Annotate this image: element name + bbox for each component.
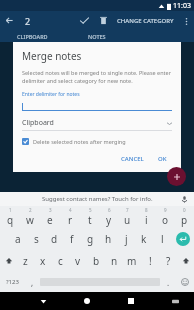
- button[interactable]: Delete selected notes after merging: [22, 138, 172, 145]
- staticText: b: [93, 254, 100, 268]
- staticText: 2: [25, 15, 31, 27]
- button[interactable]: ?: [159, 250, 177, 272]
- button[interactable]: Shift: [177, 250, 194, 272]
- staticText: g: [87, 232, 94, 246]
- button[interactable]: .: [160, 272, 176, 292]
- button[interactable]: h: [99, 228, 117, 250]
- button[interactable]: Back: [35, 293, 51, 309]
- staticText: 4: [69, 207, 72, 213]
- staticText: Enter delimiter for notes: [22, 91, 80, 98]
- button[interactable]: 0: [175, 206, 194, 228]
- staticText: Suggest contact names? Touch for info.: [42, 195, 153, 203]
- button[interactable]: x: [34, 250, 51, 272]
- staticText: z: [23, 254, 28, 268]
- staticText: q: [7, 213, 14, 227]
- button[interactable]: a: [9, 228, 27, 250]
- button[interactable]: Recents: [123, 293, 139, 309]
- button[interactable]: 8: [137, 206, 156, 228]
- button[interactable]: k: [135, 228, 153, 250]
- button[interactable]: b: [87, 250, 105, 272]
- staticText: d: [51, 232, 58, 246]
- button[interactable]: 7: [118, 206, 137, 228]
- button[interactable]: c: [51, 250, 69, 272]
- staticText: l: [161, 232, 164, 246]
- button[interactable]: Suggest contact names? Touch for info.: [0, 192, 194, 206]
- button[interactable]: Clipboard: [22, 118, 172, 128]
- button[interactable]: s: [27, 228, 45, 250]
- staticText: t: [88, 213, 92, 227]
- button[interactable]: l: [153, 228, 171, 250]
- button[interactable]: z: [17, 250, 34, 272]
- staticText: i: [145, 213, 148, 227]
- staticText: 5: [89, 207, 92, 213]
- staticText: m: [127, 254, 137, 268]
- staticText: w: [26, 213, 34, 227]
- button[interactable]: v: [69, 250, 87, 272]
- button[interactable]: Add: [167, 167, 186, 186]
- staticText: 8: [145, 207, 148, 213]
- button[interactable]: ?123: [0, 272, 24, 292]
- staticText: c: [58, 254, 63, 268]
- staticText: Delete selected notes after merging: [33, 138, 126, 145]
- button[interactable]: 5: [80, 206, 99, 228]
- button[interactable]: ,: [24, 272, 40, 292]
- staticText: x: [40, 254, 46, 268]
- staticText: ?123: [6, 278, 19, 286]
- button[interactable]: j: [117, 228, 135, 250]
- button[interactable]: Voice input: [179, 194, 189, 204]
- button[interactable]: CANCEL: [116, 153, 149, 165]
- button[interactable]: 6: [99, 206, 118, 228]
- button[interactable]: 4: [60, 206, 80, 228]
- staticText: Clipboard: [22, 118, 54, 128]
- staticText: 3: [49, 207, 52, 213]
- staticText: CLIPBOARD: [17, 33, 48, 40]
- button[interactable]: Delete: [94, 11, 113, 30]
- staticText: 2: [29, 207, 32, 213]
- button[interactable]: 3: [40, 206, 60, 228]
- staticText: e: [47, 213, 53, 227]
- button[interactable]: f: [63, 228, 81, 250]
- button[interactable]: d: [45, 228, 63, 250]
- staticText: y: [106, 213, 112, 227]
- button[interactable]: Back: [0, 11, 19, 30]
- staticText: CANCEL: [121, 155, 144, 163]
- button[interactable]: Shift: [0, 250, 17, 272]
- button[interactable]: Emoji: [176, 272, 194, 292]
- button[interactable]: CHANGE CATEGORY: [113, 17, 178, 25]
- staticText: !: [149, 254, 152, 268]
- staticText: 0: [183, 207, 186, 213]
- button[interactable]: Home: [79, 293, 95, 309]
- staticText: r: [68, 213, 73, 227]
- staticText: k: [141, 232, 147, 246]
- button[interactable]: CLIPBOARD: [0, 30, 64, 42]
- staticText: p: [181, 213, 188, 227]
- button[interactable]: n: [105, 250, 123, 272]
- button[interactable]: m: [123, 250, 141, 272]
- button[interactable]: 1: [0, 206, 20, 228]
- button[interactable]: Merge: [75, 11, 94, 30]
- staticText: 1: [9, 207, 12, 213]
- staticText: 9: [164, 207, 167, 213]
- staticText: ?: [166, 254, 171, 268]
- button[interactable]: !: [141, 250, 159, 272]
- staticText: CHANGE CATEGORY: [117, 17, 174, 25]
- staticText: .: [167, 277, 170, 288]
- staticText: j: [125, 232, 128, 246]
- button[interactable]: NOTES: [64, 30, 129, 42]
- staticText: 7: [126, 207, 129, 213]
- button[interactable]: [22, 101, 172, 111]
- staticText: 6: [108, 207, 111, 213]
- staticText: n: [111, 254, 118, 268]
- button[interactable]: Hide keyboard: [167, 293, 183, 309]
- staticText: h: [105, 232, 112, 246]
- button[interactable]: More options: [178, 13, 194, 29]
- staticText: o: [162, 213, 169, 227]
- button[interactable]: 9: [156, 206, 175, 228]
- button[interactable]: 2: [20, 206, 40, 228]
- button[interactable]: OK: [153, 153, 172, 165]
- staticText: NOTES: [88, 33, 106, 40]
- button[interactable]: g: [81, 228, 99, 250]
- staticText: Selected notes will be merged to single …: [22, 69, 172, 85]
- button[interactable]: Enter: [171, 228, 194, 250]
